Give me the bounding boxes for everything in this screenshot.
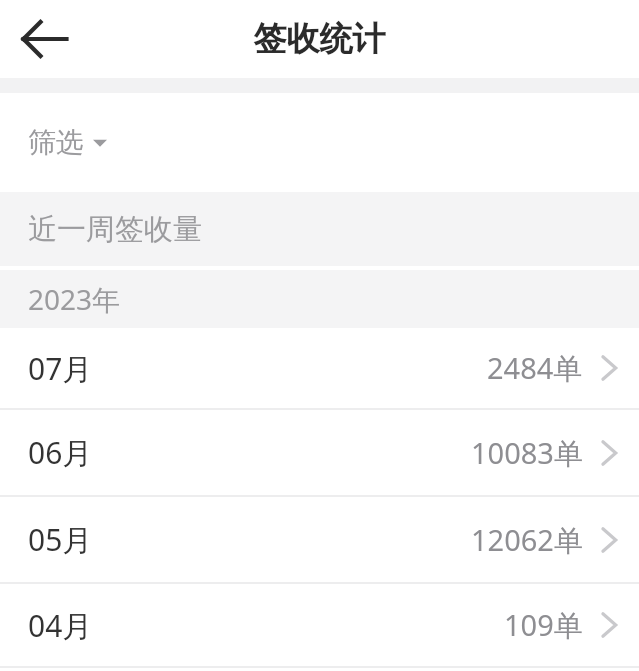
staticText: 109单: [504, 605, 583, 645]
staticText: 2023年: [28, 280, 121, 318]
staticText: 筛选: [28, 125, 84, 160]
staticText: 2484单: [487, 348, 583, 388]
button[interactable]: 05月: [0, 497, 639, 582]
staticText: 签收统计: [0, 18, 639, 60]
staticText: 04月: [28, 605, 93, 646]
staticText: 06月: [28, 432, 93, 473]
button[interactable]: Back: [14, 8, 76, 70]
button[interactable]: 07月: [0, 328, 639, 408]
staticText: 近一周签收量: [28, 211, 202, 248]
button[interactable]: 筛选: [20, 115, 115, 170]
staticText: 12062单: [471, 520, 583, 560]
button[interactable]: 06月: [0, 410, 639, 495]
staticText: 05月: [28, 519, 93, 560]
button[interactable]: 04月: [0, 584, 639, 666]
staticText: 07月: [28, 348, 93, 389]
staticText: 10083单: [471, 433, 583, 473]
